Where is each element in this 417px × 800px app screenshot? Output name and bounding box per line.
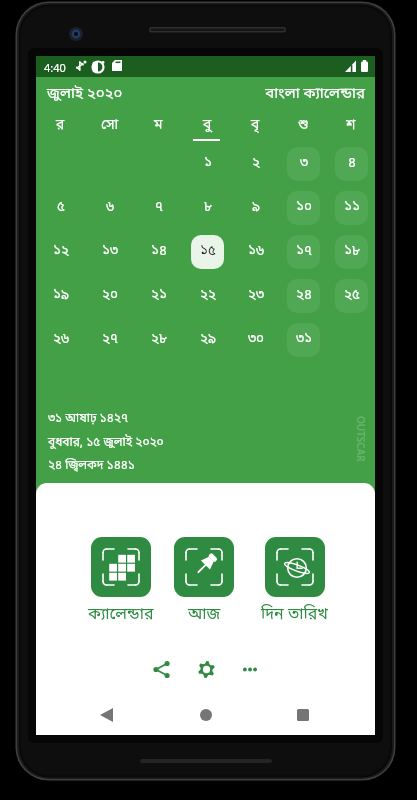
button[interactable]: ২২ <box>191 279 224 313</box>
button[interactable]: ২৩ <box>239 279 272 313</box>
staticText: ২০ <box>102 287 118 305</box>
button[interactable]: ১১ <box>335 191 368 225</box>
button[interactable]: Share <box>143 651 179 687</box>
staticText: ৪ <box>348 155 356 173</box>
staticText: ৩১ <box>296 331 312 349</box>
button[interactable]: ৩ <box>287 147 320 181</box>
button[interactable]: ৮ <box>191 191 224 225</box>
staticText: ২৯ <box>200 331 216 349</box>
button[interactable]: ৬ <box>93 191 126 225</box>
staticText: বৃ <box>251 116 260 134</box>
button[interactable]: ৩০ <box>239 323 272 357</box>
staticText: ৫ <box>57 199 65 217</box>
staticText: বাংলা ক্যালেন্ডার <box>36 84 365 104</box>
button[interactable]: ১৭ <box>287 235 320 269</box>
button[interactable]: ১ <box>191 147 224 181</box>
button[interactable]: ক্যালেন্ডার <box>88 537 154 625</box>
button[interactable]: ১৪ <box>142 235 175 269</box>
staticText: ২৩ <box>248 287 264 305</box>
staticText: ২২ <box>200 287 216 305</box>
staticText: ১৮ <box>344 243 360 261</box>
staticText: ১৭ <box>296 243 312 261</box>
button[interactable]: আজ <box>174 537 234 625</box>
button[interactable]: More options <box>232 651 268 687</box>
staticText: OUTSCAR <box>354 416 368 462</box>
button[interactable]: ২৯ <box>191 323 224 357</box>
button[interactable]: Recents <box>288 700 318 730</box>
button[interactable]: ২৮ <box>142 323 175 357</box>
staticText: ২৪ জ্বিলকদ ১৪৪১ <box>48 458 135 474</box>
staticText: ২ <box>252 155 260 173</box>
staticText: বুধবার, ১৫ জুলাই ২০২০ <box>48 435 164 451</box>
staticText: ১১ <box>344 199 360 217</box>
staticText: ২৪ <box>296 287 312 305</box>
button[interactable]: ২১ <box>142 279 175 313</box>
staticText: ম <box>154 116 163 134</box>
staticText: ১৯ <box>53 287 69 305</box>
staticText: ১ <box>204 155 212 173</box>
button[interactable]: ৭ <box>142 191 175 225</box>
staticText: ১০ <box>296 199 312 217</box>
button[interactable]: দিন তারিখ <box>261 537 328 625</box>
staticText: ১৪ <box>151 243 167 261</box>
button[interactable]: ২৭ <box>93 323 126 357</box>
staticText: ২৬ <box>53 331 69 349</box>
staticText: র <box>56 116 65 134</box>
button[interactable]: ২৬ <box>44 323 77 357</box>
button[interactable]: ২৪ <box>287 279 320 313</box>
staticText: শ <box>346 116 356 134</box>
button[interactable]: Back <box>91 700 121 730</box>
staticText: 4:40 <box>44 60 66 75</box>
staticText: ২৭ <box>102 331 118 349</box>
button[interactable]: ২ <box>239 147 272 181</box>
staticText: ৩০ <box>248 331 264 349</box>
staticText: ১৬ <box>248 243 264 261</box>
button[interactable]: ১৯ <box>44 279 77 313</box>
button[interactable]: ১৬ <box>239 235 272 269</box>
button[interactable]: Settings <box>188 651 224 687</box>
staticText: আজ <box>188 604 221 625</box>
staticText: ৩১ আষাঢ় ১৪২৭ <box>48 411 129 427</box>
button[interactable]: ১২ <box>44 235 77 269</box>
staticText: ৯ <box>252 199 260 217</box>
staticText: ১২ <box>53 243 69 261</box>
staticText: ২১ <box>151 287 167 305</box>
button[interactable]: ১৩ <box>93 235 126 269</box>
staticText: বু <box>203 116 212 134</box>
staticText: ২৫ <box>344 287 360 305</box>
staticText: ৮ <box>204 199 212 217</box>
button[interactable]: ২৫ <box>335 279 368 313</box>
button[interactable]: ২০ <box>93 279 126 313</box>
button[interactable]: ১০ <box>287 191 320 225</box>
button[interactable]: ১৫ <box>191 235 224 269</box>
staticText: ৭ <box>155 199 163 217</box>
button[interactable]: ৩১ <box>287 323 320 357</box>
button[interactable]: Home <box>191 700 221 730</box>
staticText: ক্যালেন্ডার <box>88 604 154 625</box>
button[interactable]: ৯ <box>239 191 272 225</box>
staticText: জুলাই ২০২০ <box>47 84 123 104</box>
staticText: সো <box>101 116 119 134</box>
staticText: ১৩ <box>102 243 118 261</box>
staticText: দিন তারিখ <box>261 604 328 625</box>
staticText: শু <box>298 116 309 134</box>
button[interactable]: ৫ <box>44 191 77 225</box>
staticText: ৩ <box>300 155 308 173</box>
staticText: ২৮ <box>151 331 167 349</box>
button[interactable]: ১৮ <box>335 235 368 269</box>
staticText: ১৫ <box>200 243 216 261</box>
button[interactable]: ৪ <box>335 147 368 181</box>
staticText: ৬ <box>106 199 114 217</box>
